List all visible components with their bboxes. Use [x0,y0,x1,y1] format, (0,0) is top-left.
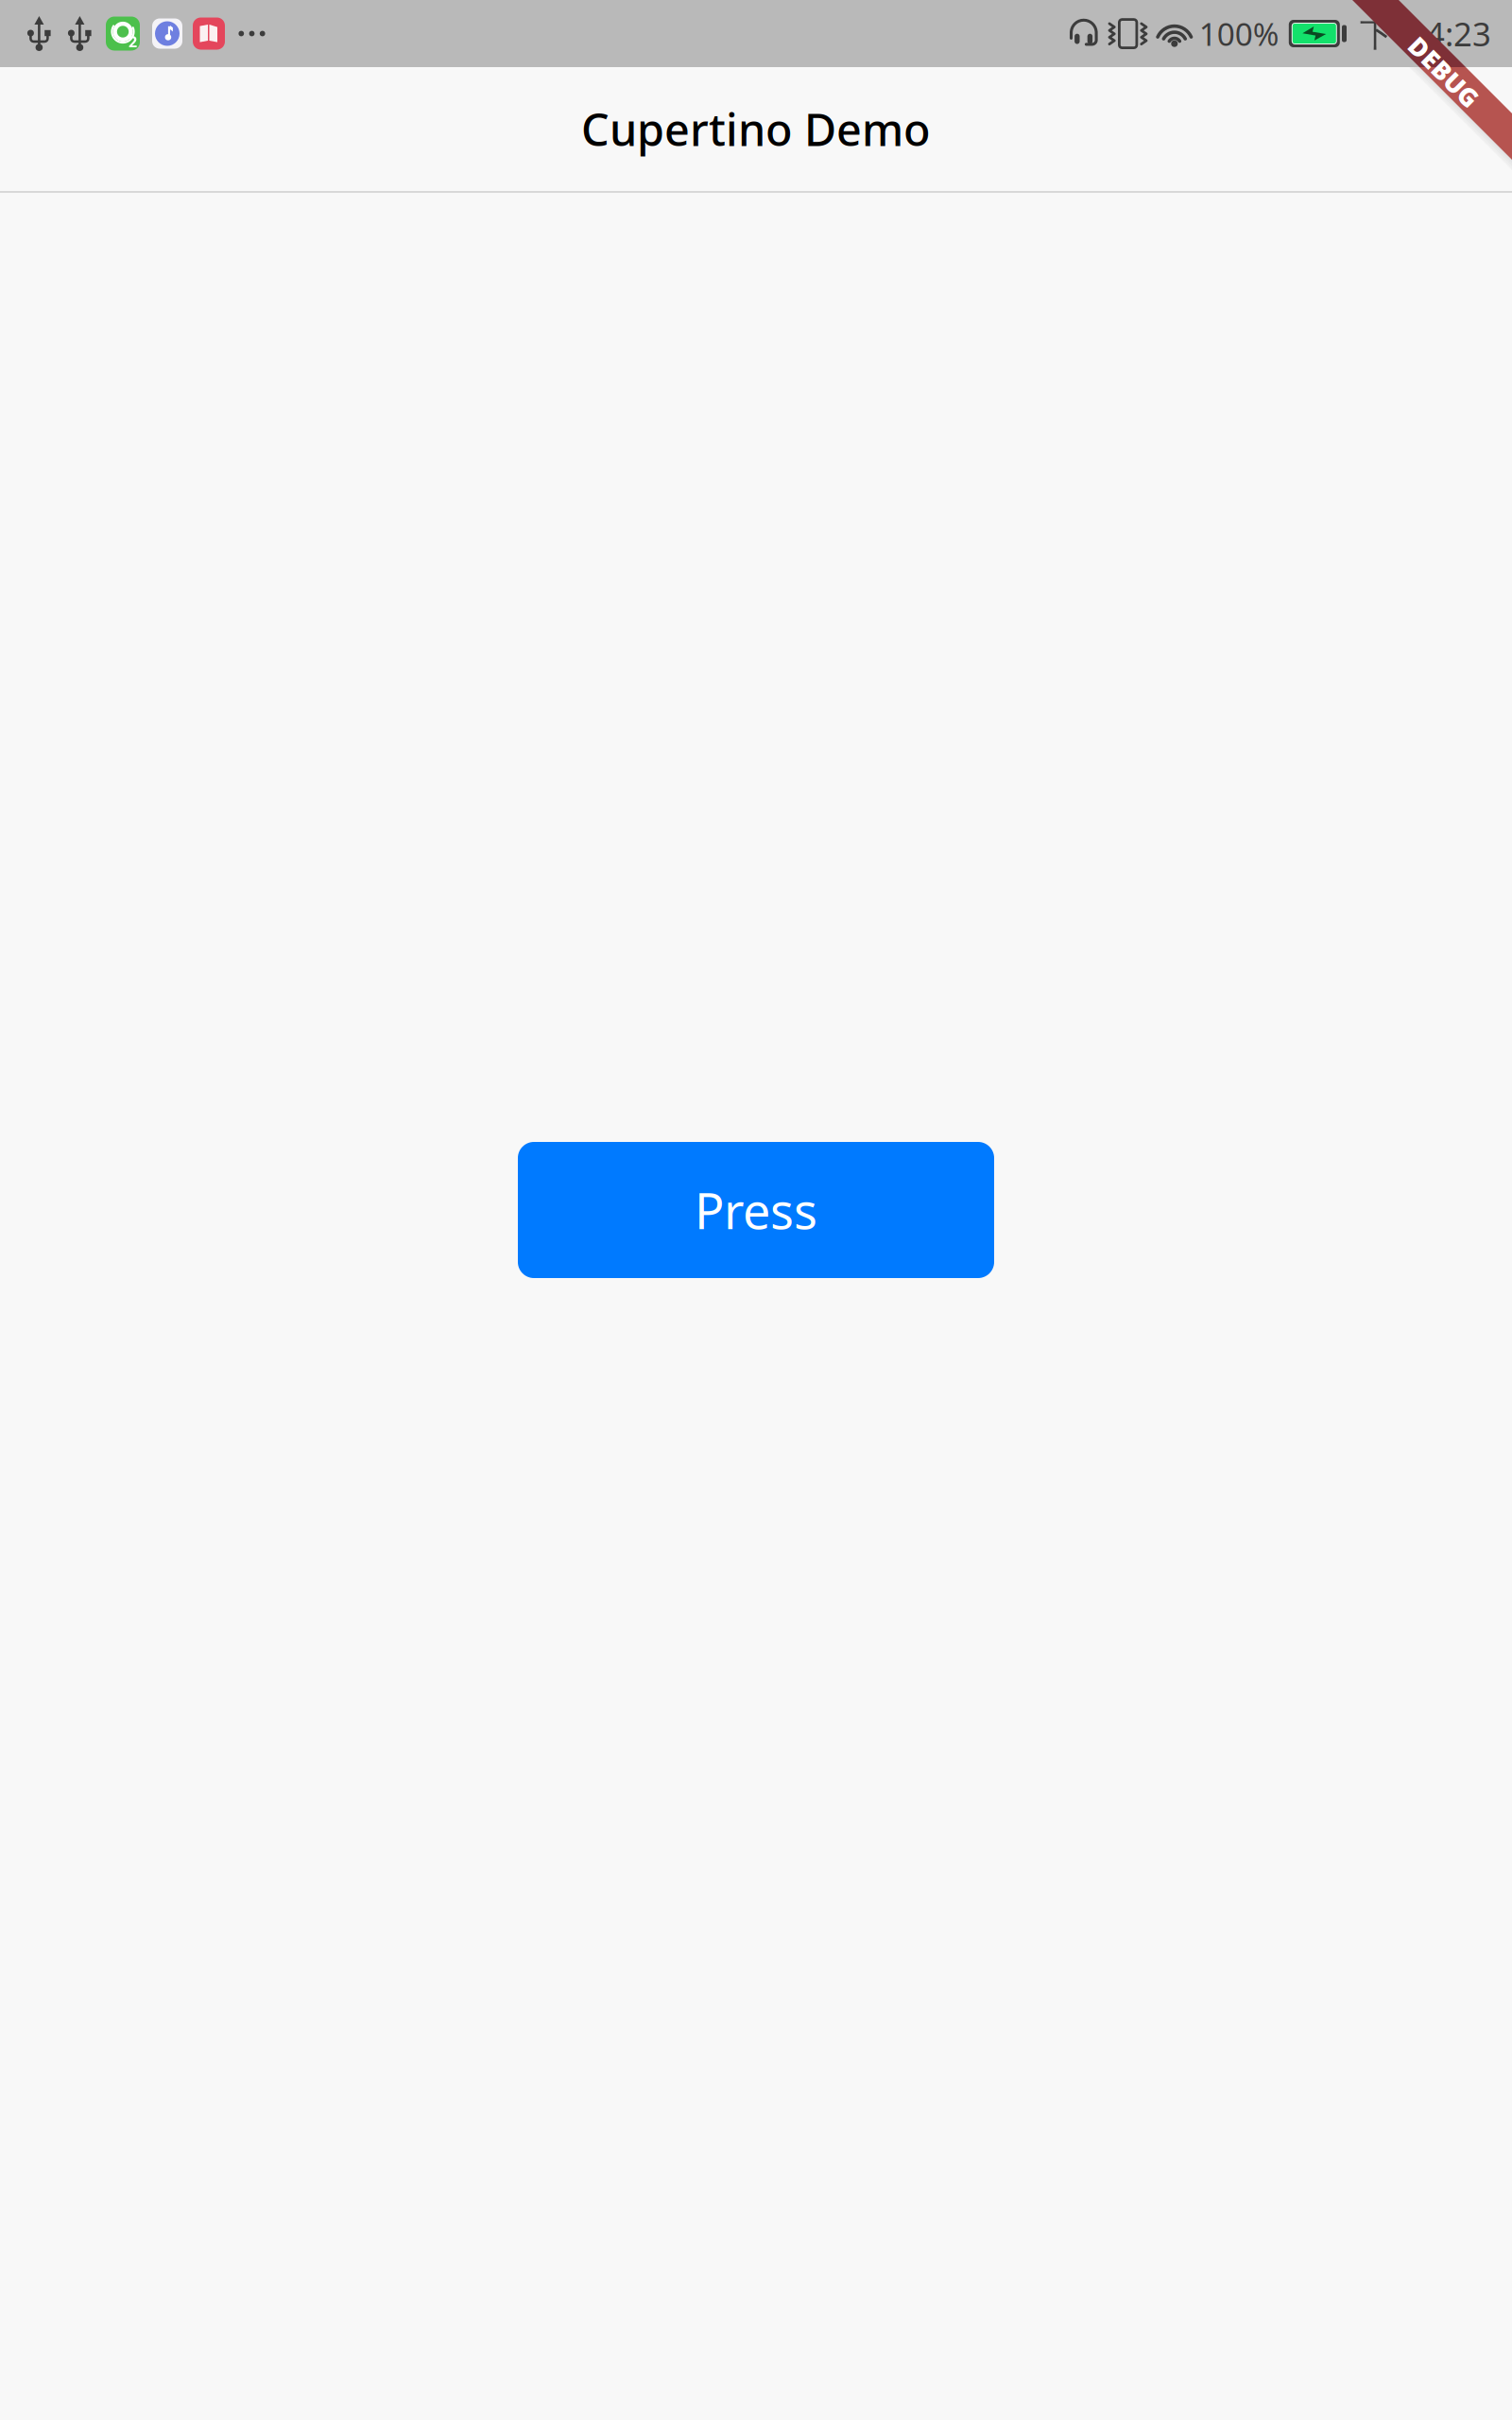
staticText: Press [695,1177,817,1243]
staticText: Cupertino Demo [581,100,931,158]
staticText: 2 [129,32,137,52]
staticText: 100% [1199,13,1279,55]
button[interactable]: Press [518,1142,994,1278]
staticText: 下午4:23 [1360,12,1491,55]
staticText: DEBUG [1400,55,1488,89]
